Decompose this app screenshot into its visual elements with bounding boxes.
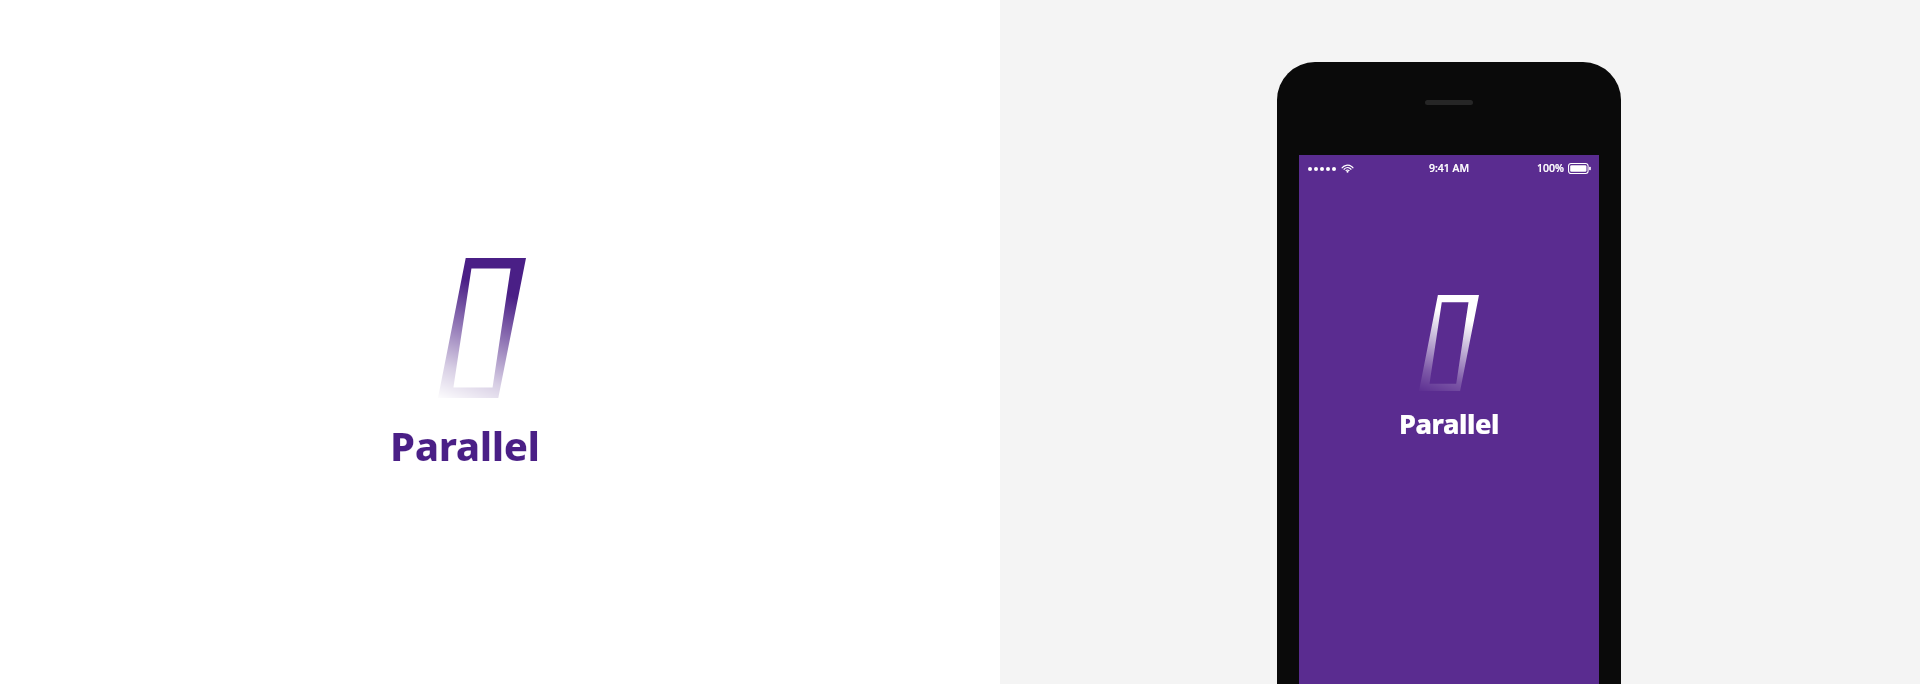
staticText: Parallel [390,418,540,472]
staticText: Parallel [1399,405,1499,442]
button[interactable]: Parallel logo [390,258,540,472]
button[interactable]: Parallel logo [1399,295,1499,442]
staticText: 9:41 AM [1429,161,1470,175]
other: Parallel logo [438,258,526,398]
staticText: 100% [1537,161,1564,175]
other: Parallel logo [1419,295,1479,391]
